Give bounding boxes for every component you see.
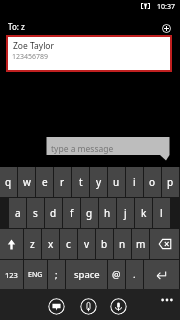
staticText: To: z [8,21,25,32]
button[interactable]: k [135,198,152,228]
staticText: s [33,206,38,220]
staticText: b [101,237,108,251]
staticText: u [113,175,120,189]
staticText: t [79,175,83,189]
staticText: z [30,237,35,251]
button[interactable]: e [36,167,53,197]
staticText: Zoe Taylor [13,40,55,52]
staticText: l [160,206,163,220]
staticText: x [48,237,54,251]
staticText: h [104,206,111,220]
button[interactable]: c [60,229,77,259]
staticText: y [96,175,102,189]
staticText: @ [112,268,121,281]
button[interactable]: w [18,167,35,197]
staticText: o [149,175,156,189]
button[interactable]: @ [108,260,125,289]
staticText: ENG [28,270,43,280]
button[interactable]: d [45,198,62,228]
button[interactable]: i [126,167,143,197]
staticText: 10:37 [157,2,175,12]
button[interactable]: l [153,198,170,228]
button[interactable]: . [126,260,143,289]
staticText: space [74,268,100,281]
staticText: 123456789 [12,52,49,62]
staticText: m [136,237,146,251]
button[interactable]: Voice [110,298,127,315]
staticText: c [66,237,71,251]
button[interactable]: t [72,167,89,197]
button[interactable]: f [63,198,80,228]
staticText: e [42,175,48,189]
staticText: j [124,206,127,220]
staticText: . [133,268,136,281]
button[interactable]: a [9,198,26,228]
staticText: r [60,175,65,189]
button[interactable]: b [96,229,113,259]
button[interactable]: space [66,260,107,289]
button[interactable]: n [114,229,131,259]
button[interactable]: s [27,198,44,228]
staticText: v [84,237,90,251]
button[interactable]: y [90,167,107,197]
button[interactable]: Attach [80,298,97,315]
button[interactable]: 123 [0,260,23,289]
button[interactable]: More options [156,292,178,308]
button[interactable]: r [54,167,71,197]
staticText: n [119,237,126,251]
staticText: f [70,206,74,220]
button[interactable]: h [99,198,116,228]
button[interactable]: g [81,198,98,228]
button[interactable]: Shift [0,229,23,259]
staticText: w [23,175,31,189]
button[interactable]: u [108,167,125,197]
button[interactable]: x [42,229,59,259]
staticText: a [15,206,21,220]
button[interactable]: Add contact [158,20,175,37]
button[interactable]: Backspace [150,229,179,259]
button[interactable]: Messages [48,298,65,315]
staticText: g [86,206,93,220]
button[interactable]: j [117,198,134,228]
button[interactable]: p [162,167,179,197]
button[interactable]: ENG [24,260,47,289]
button[interactable]: o [144,167,161,197]
button[interactable]: Enter [144,260,179,289]
staticText: q [5,175,12,189]
button[interactable]: q [0,167,17,197]
button[interactable]: v [78,229,95,259]
button[interactable]: ; [48,260,65,289]
staticText: p [167,175,174,189]
button[interactable]: m [132,229,149,259]
staticText: i [133,175,136,189]
button[interactable]: z [24,229,41,259]
staticText: d [50,206,57,220]
button[interactable]: Zoe Taylor [8,37,170,70]
staticText: 123 [5,270,18,280]
staticText: k [141,206,147,220]
staticText: ; [55,268,58,281]
staticText: type a message [51,143,114,155]
